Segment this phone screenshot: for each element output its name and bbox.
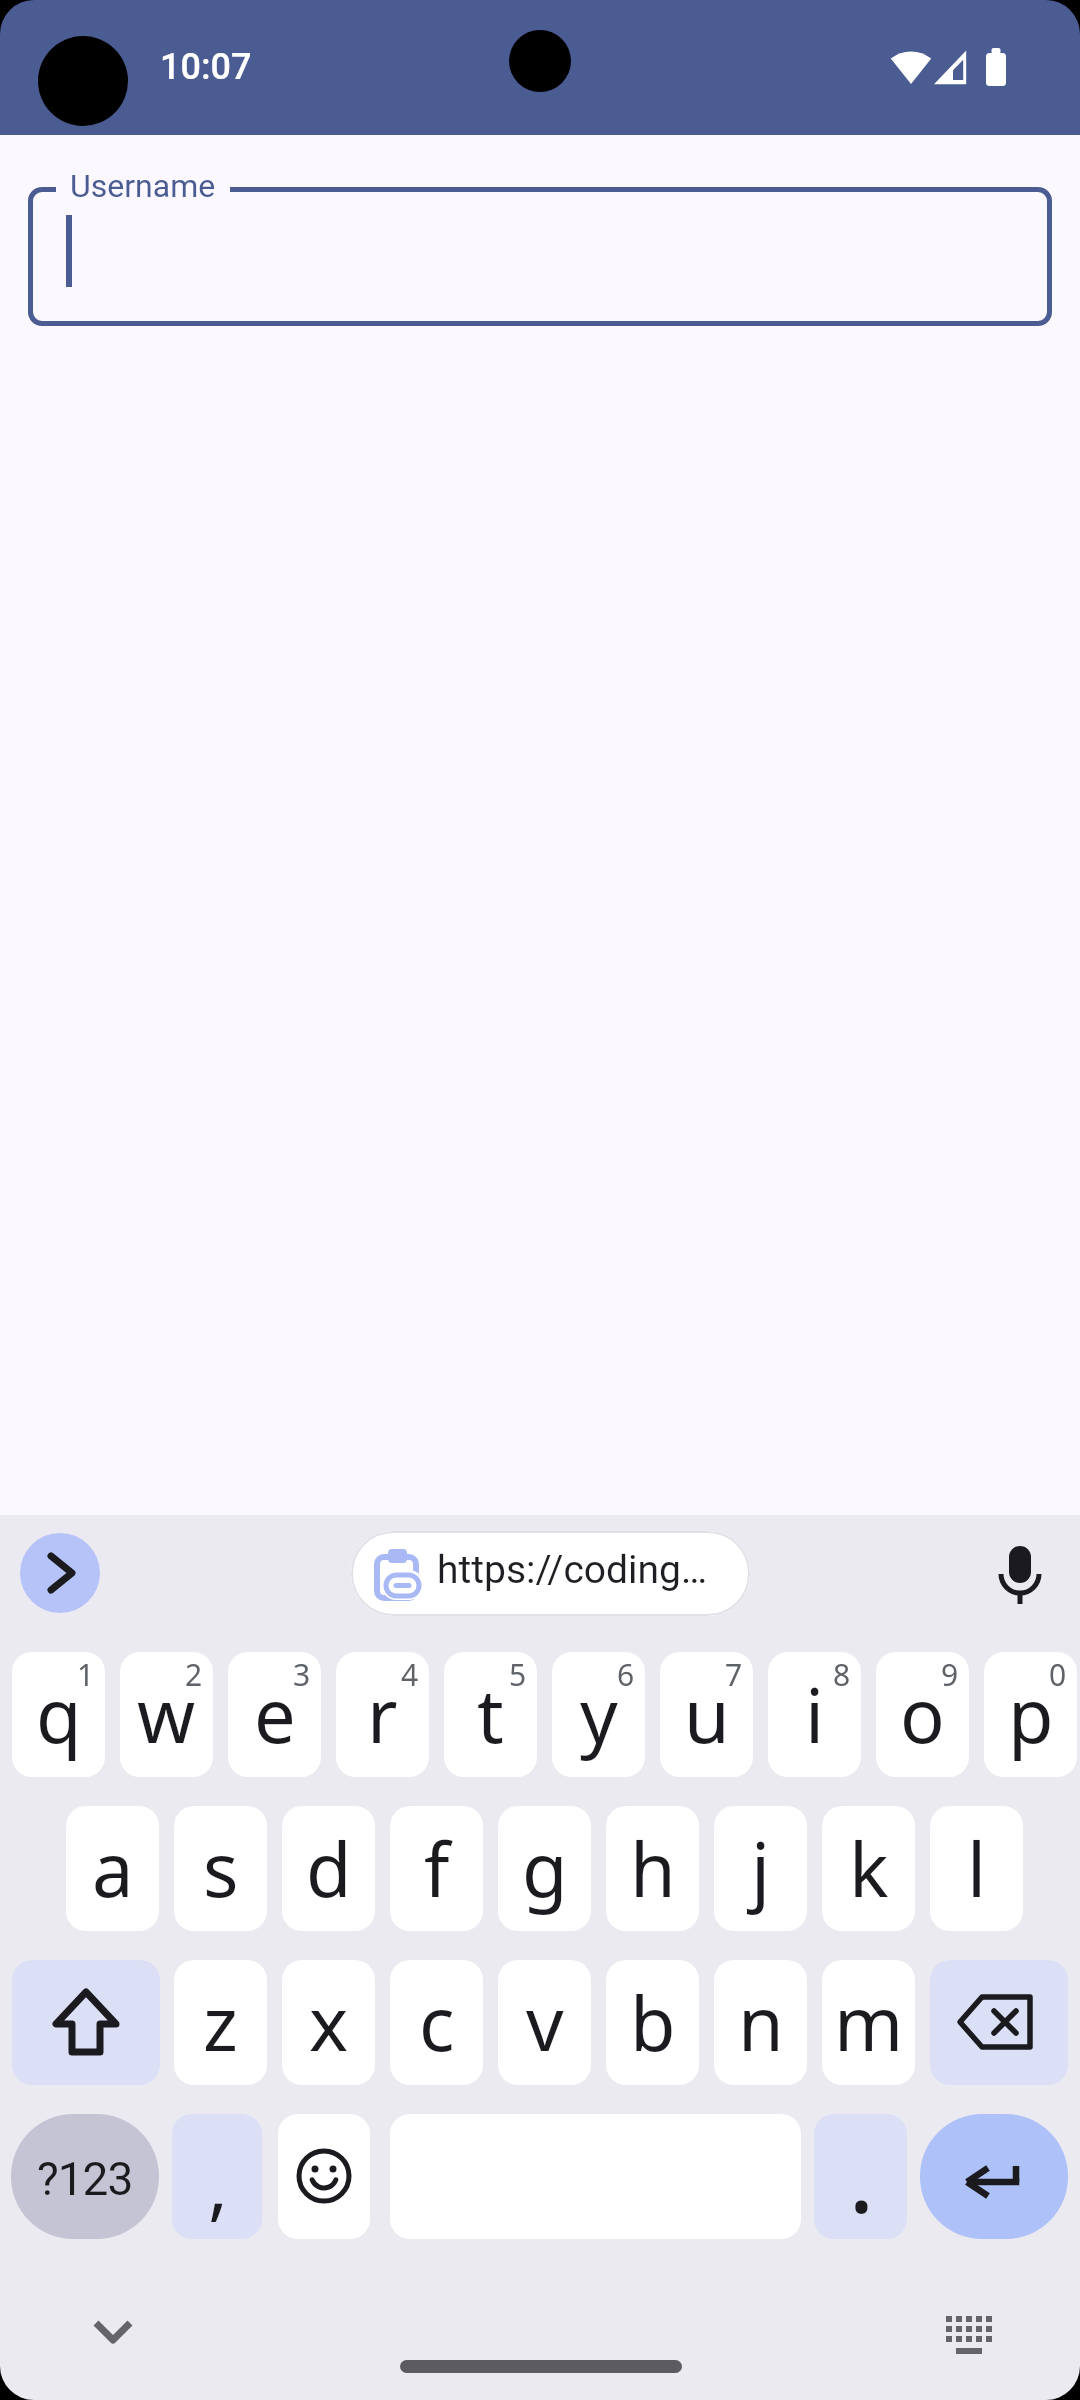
button[interactable]: o	[876, 1652, 969, 1777]
staticText: 4	[401, 1654, 419, 1695]
button[interactable]: ?123	[11, 2114, 159, 2239]
staticText: w	[137, 1664, 196, 1765]
button[interactable]	[998, 1546, 1042, 1608]
staticText: https://coding…	[437, 1547, 708, 1593]
button[interactable]: l	[930, 1806, 1023, 1931]
staticText: 6	[617, 1654, 635, 1695]
button[interactable]: m	[822, 1960, 915, 2085]
staticText: q	[36, 1664, 82, 1765]
staticText: g	[522, 1818, 568, 1919]
button[interactable]: i	[768, 1652, 861, 1777]
staticText: f	[424, 1818, 450, 1919]
staticText: 5	[509, 1654, 527, 1695]
staticText: b	[630, 1972, 676, 2073]
staticText: i	[805, 1664, 825, 1765]
staticText: o	[900, 1664, 945, 1765]
button[interactable]: a	[66, 1806, 159, 1931]
staticText: a	[92, 1818, 134, 1919]
button[interactable]: v	[498, 1960, 591, 2085]
button[interactable]: c	[390, 1960, 483, 2085]
button[interactable]	[938, 2305, 1008, 2365]
button[interactable]: e	[228, 1652, 321, 1777]
staticText: 9	[941, 1654, 959, 1695]
button[interactable]: x	[282, 1960, 375, 2085]
staticText: Username	[70, 167, 216, 205]
staticText: z	[203, 1972, 238, 2073]
staticText: 1	[77, 1654, 95, 1695]
button[interactable]: r	[336, 1652, 429, 1777]
staticText: m	[834, 1972, 904, 2073]
button[interactable]: f	[390, 1806, 483, 1931]
button[interactable]: p	[984, 1652, 1077, 1777]
staticText: l	[967, 1818, 987, 1919]
button[interactable]	[78, 2305, 148, 2365]
button[interactable]	[12, 1960, 160, 2085]
staticText: j	[751, 1818, 771, 1919]
staticText: t	[477, 1664, 504, 1765]
button[interactable]: d	[282, 1806, 375, 1931]
button[interactable]: b	[606, 1960, 699, 2085]
button[interactable]: y	[552, 1652, 645, 1777]
button[interactable]	[920, 2114, 1068, 2239]
button[interactable]: https://coding…	[351, 1531, 750, 1616]
button[interactable]	[278, 2114, 370, 2239]
button[interactable]: n	[714, 1960, 807, 2085]
button[interactable]: g	[498, 1806, 591, 1931]
button[interactable]: ,	[172, 2114, 262, 2239]
staticText: k	[849, 1818, 889, 1919]
button[interactable]: .	[814, 2114, 907, 2239]
staticText: u	[684, 1664, 730, 1765]
staticText: s	[203, 1818, 239, 1919]
button[interactable]: u	[660, 1652, 753, 1777]
button[interactable]	[20, 1533, 100, 1613]
staticText: 10:07	[160, 46, 252, 88]
button[interactable]: j	[714, 1806, 807, 1931]
staticText: 3	[293, 1654, 311, 1695]
button[interactable]: t	[444, 1652, 537, 1777]
button[interactable]: z	[174, 1960, 267, 2085]
staticText: .	[848, 2114, 875, 2231]
staticText: 7	[725, 1654, 743, 1695]
staticText: n	[738, 1972, 784, 2073]
button[interactable]: h	[606, 1806, 699, 1931]
staticText: d	[306, 1818, 352, 1919]
staticText: 8	[833, 1654, 851, 1695]
staticText: p	[1008, 1664, 1054, 1765]
staticText: ?123	[37, 2152, 133, 2206]
staticText: ,	[208, 2133, 228, 2234]
staticText: h	[630, 1818, 676, 1919]
button[interactable]	[28, 187, 1052, 326]
button[interactable]: s	[174, 1806, 267, 1931]
staticText: x	[309, 1972, 349, 2073]
button[interactable]: q	[12, 1652, 105, 1777]
button[interactable]: w	[120, 1652, 213, 1777]
staticText: 2	[185, 1654, 203, 1695]
staticText: c	[419, 1972, 455, 2073]
button[interactable]: k	[822, 1806, 915, 1931]
staticText: e	[254, 1664, 296, 1765]
staticText: 0	[1049, 1654, 1067, 1695]
staticText: y	[580, 1664, 618, 1765]
staticText: v	[526, 1972, 564, 2073]
staticText: r	[367, 1664, 398, 1765]
button[interactable]	[930, 1960, 1068, 2085]
